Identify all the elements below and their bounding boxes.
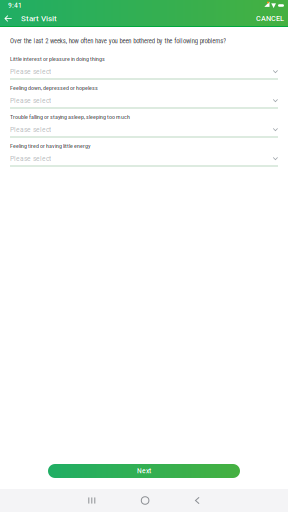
button[interactable]: Back [0, 11, 21, 26]
staticText: Please select [10, 68, 51, 75]
staticText: Feeling down, depressed or hopeless [10, 84, 98, 91]
button[interactable]: Back [189, 491, 206, 510]
staticText: CANCEL [256, 14, 284, 23]
staticText: Little interest or pleasure in doing thi… [10, 55, 105, 62]
button[interactable]: Home [135, 491, 155, 510]
button[interactable]: Please select [10, 96, 278, 110]
button[interactable]: CANCEL [252, 11, 288, 26]
staticText: Start Visit [21, 14, 57, 23]
button[interactable]: Please select [10, 67, 278, 81]
button[interactable]: Please select [10, 125, 278, 139]
staticText: Feeling tired or having little energy [10, 142, 90, 149]
staticText: Next [137, 467, 151, 475]
button[interactable]: Next [48, 464, 240, 478]
button[interactable]: Recent apps [82, 491, 101, 510]
button[interactable]: Please select [10, 154, 278, 168]
staticText: Over the last 2 weeks, how often have yo… [10, 37, 226, 45]
staticText: 9:41 [8, 2, 22, 9]
staticText: Please select [10, 126, 51, 133]
staticText: Trouble falling or staying asleep, sleep… [10, 113, 130, 120]
staticText: Please select [10, 97, 51, 104]
button[interactable]: Start Visit [21, 11, 57, 26]
staticText: Please select [10, 155, 51, 162]
